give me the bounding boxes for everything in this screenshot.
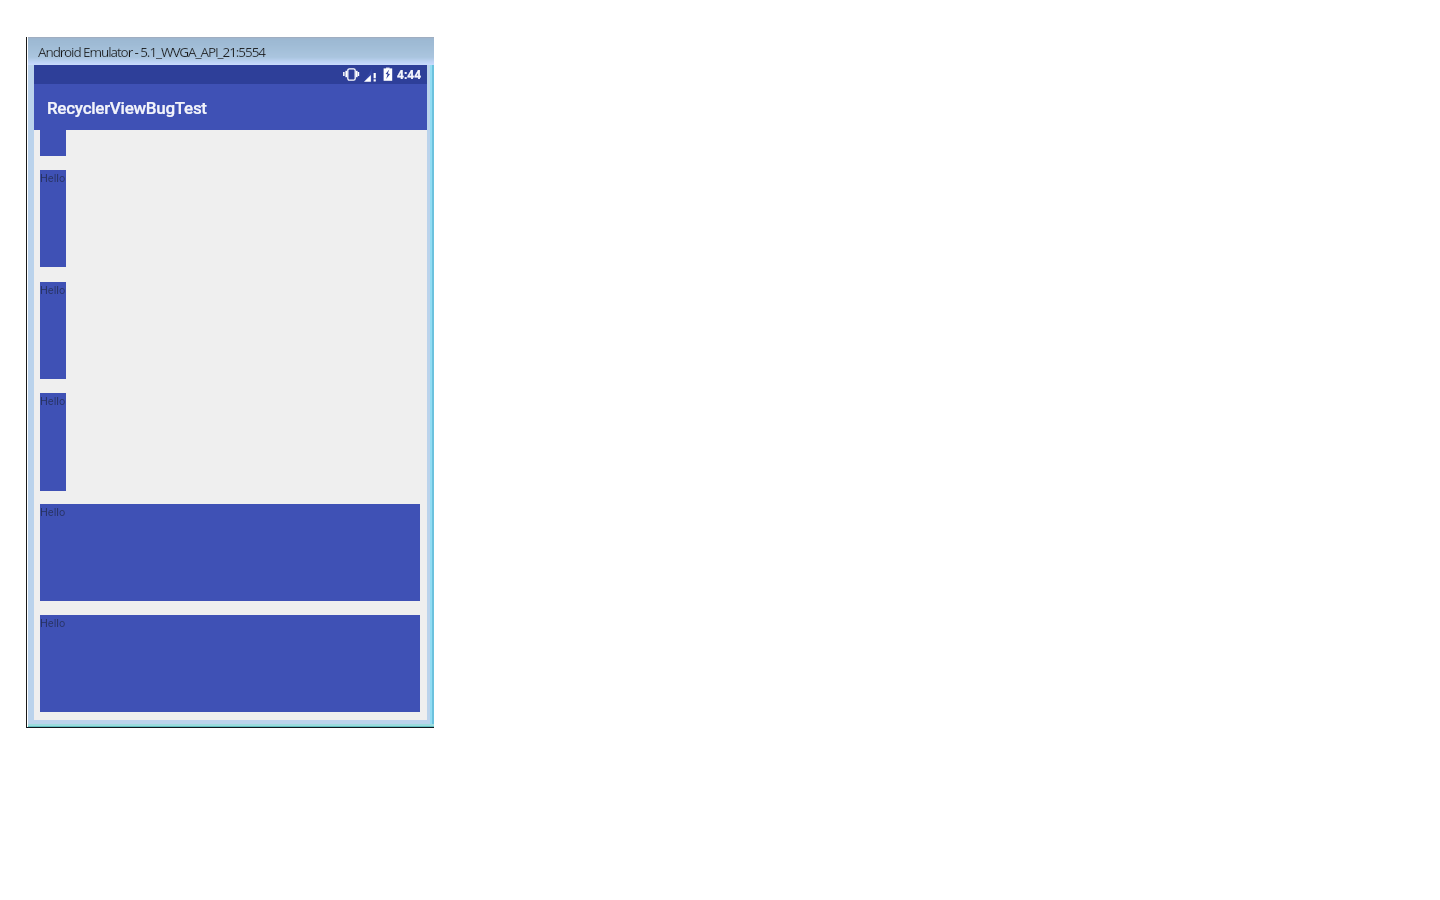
button[interactable]: Hello: [40, 393, 66, 491]
staticText: Hello: [40, 617, 66, 630]
staticText: 4:44: [397, 68, 422, 82]
staticText: Hello: [40, 284, 66, 297]
staticText: Hello: [40, 506, 66, 519]
other: Vibrate: [343, 68, 359, 81]
staticText: RecyclerViewBugTest: [47, 98, 207, 118]
button[interactable]: Hello: [40, 282, 66, 379]
button[interactable]: Hello: [40, 170, 66, 267]
staticText: Android Emulator - 5.1_WVGA_API_21:5554: [38, 43, 265, 61]
other: Signal strength: [364, 68, 377, 82]
staticText: Hello: [40, 172, 66, 185]
staticText: Hello: [40, 395, 66, 408]
other: Battery charging: [383, 67, 393, 81]
